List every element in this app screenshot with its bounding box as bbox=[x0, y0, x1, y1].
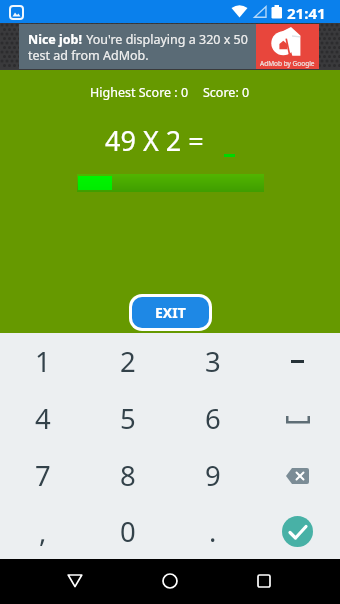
staticText: . bbox=[209, 513, 217, 550]
button[interactable]: 0 bbox=[85, 504, 170, 559]
staticText: 1 bbox=[35, 343, 51, 380]
button[interactable] bbox=[255, 333, 340, 390]
button[interactable]: . bbox=[170, 504, 255, 559]
button[interactable]: 1 bbox=[0, 333, 85, 390]
button[interactable]: 8 bbox=[85, 447, 170, 504]
staticText: 6 bbox=[205, 400, 221, 437]
button[interactable] bbox=[255, 390, 340, 447]
button[interactable]: 2 bbox=[85, 333, 170, 390]
staticText: 7 bbox=[35, 457, 51, 494]
button[interactable] bbox=[255, 504, 340, 559]
staticText: 49 X 2 = bbox=[105, 122, 204, 159]
staticText: 3 bbox=[205, 343, 221, 380]
button[interactable] bbox=[255, 447, 340, 504]
button[interactable]: 9 bbox=[170, 447, 255, 504]
button[interactable] bbox=[148, 567, 192, 595]
button[interactable]: 3 bbox=[170, 333, 255, 390]
button[interactable] bbox=[242, 567, 286, 595]
staticText: 5 bbox=[120, 400, 136, 437]
staticText: 2 bbox=[120, 343, 136, 380]
staticText: 8 bbox=[120, 457, 136, 494]
staticText: AdMob by Google bbox=[260, 59, 315, 68]
staticText: Nice job! bbox=[28, 31, 83, 48]
button[interactable]: EXIT bbox=[129, 294, 212, 331]
staticText: , bbox=[39, 513, 47, 550]
staticText: 9 bbox=[205, 457, 221, 494]
button[interactable]: 6 bbox=[170, 390, 255, 447]
staticText: You're displaying a 320 x 50 bbox=[83, 31, 248, 48]
button[interactable]: Nice job! bbox=[0, 23, 340, 70]
staticText: 0 bbox=[120, 513, 136, 550]
staticText: EXIT bbox=[155, 303, 186, 322]
button[interactable] bbox=[53, 567, 97, 595]
staticText: 4 bbox=[35, 400, 51, 437]
button[interactable]: 7 bbox=[0, 447, 85, 504]
staticText: test ad from AdMob. bbox=[28, 47, 149, 64]
staticText: Score: 0 bbox=[203, 84, 250, 101]
button[interactable]: , bbox=[0, 504, 85, 559]
button[interactable]: 4 bbox=[0, 390, 85, 447]
staticText: Highest Score : 0 bbox=[90, 84, 189, 101]
staticText: 21:41 bbox=[287, 3, 326, 23]
button[interactable]: 5 bbox=[85, 390, 170, 447]
